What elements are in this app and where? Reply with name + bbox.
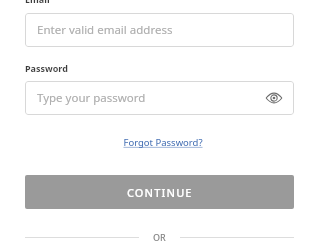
staticText: CONTINUE (127, 185, 193, 200)
staticText: OR (153, 231, 166, 243)
staticText: Type your password (37, 90, 146, 106)
staticText: Enter valid email address (37, 22, 173, 38)
button[interactable]: Show password (265, 89, 283, 107)
staticText: Email (25, 0, 50, 5)
button[interactable]: Enter valid email address (25, 13, 294, 47)
staticText: Password (25, 62, 68, 74)
button[interactable]: Forgot Password? (123, 136, 203, 149)
staticText: Forgot Password? (123, 136, 203, 149)
button[interactable]: Type your password (25, 81, 294, 115)
button[interactable]: CONTINUE (25, 175, 294, 209)
